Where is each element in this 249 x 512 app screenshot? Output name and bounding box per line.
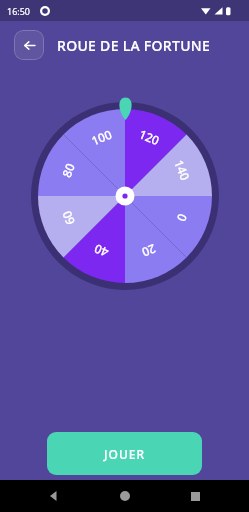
staticText: 0 [174, 212, 191, 224]
button[interactable]: Back [14, 30, 44, 60]
staticText: 140 [171, 157, 194, 183]
button[interactable]: Back [38, 480, 70, 512]
staticText: 20 [139, 241, 159, 261]
staticText: 16:50 [7, 5, 31, 17]
staticText: 120 [137, 126, 162, 148]
button[interactable]: JOUER [47, 432, 202, 475]
button[interactable]: Recents [179, 480, 211, 512]
staticText: 40 [91, 241, 111, 261]
button[interactable]: Home [109, 480, 141, 512]
staticText: 100 [89, 126, 114, 148]
staticText: JOUER [104, 446, 146, 462]
staticText: 60 [58, 208, 78, 228]
staticText: ROUE DE LA FORTUNE [57, 36, 211, 55]
staticText: 80 [58, 160, 78, 180]
